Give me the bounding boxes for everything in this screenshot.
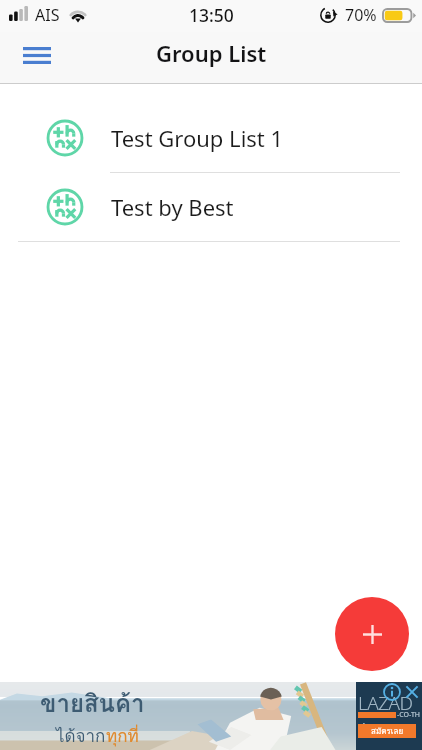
staticText: Test Group List 1 — [111, 123, 284, 153]
staticText: สมัครเลย — [371, 725, 404, 738]
staticText: -CO-TH — [397, 710, 421, 720]
staticText: 70% — [345, 4, 377, 26]
staticText: LAZADA — [358, 690, 422, 742]
staticText: ทุกที่ — [106, 722, 139, 749]
button[interactable]: Open navigation menu — [16, 34, 58, 76]
button[interactable]: Ad info — [382, 682, 402, 702]
button[interactable]: Test by Best — [0, 173, 422, 241]
staticText: Group List — [156, 38, 267, 68]
staticText: Test by Best — [111, 192, 234, 222]
button[interactable]: Test Group List 1 — [0, 104, 422, 172]
button[interactable]: Add group — [335, 597, 409, 671]
staticText: ขายสินค้า — [40, 684, 145, 722]
staticText: AIS — [35, 4, 60, 26]
staticText: 13:50 — [189, 3, 234, 27]
button[interactable]: Advertisement — [0, 682, 422, 750]
button[interactable]: สมัครเลย — [358, 724, 416, 738]
staticText: ได้จาก — [56, 722, 106, 749]
button[interactable]: Close ad — [402, 682, 422, 702]
